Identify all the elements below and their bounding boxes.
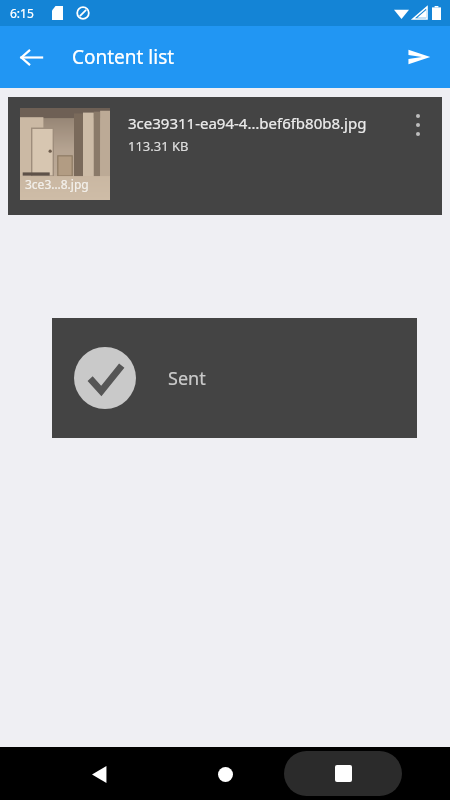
button[interactable]: Back xyxy=(76,750,124,798)
staticText: 3ce39311-ea94-4…bef6fb80b8.jpg xyxy=(128,113,367,133)
staticText: 3ce3…8.jpg xyxy=(25,176,89,192)
button[interactable]: Home xyxy=(201,750,249,798)
button[interactable]: Recent apps xyxy=(284,751,402,796)
button[interactable]: 3ce3…8.jpg xyxy=(8,97,442,215)
button[interactable]: Back xyxy=(4,30,58,84)
staticText: 113.31 KB xyxy=(128,137,189,155)
button[interactable]: Sent xyxy=(52,318,417,438)
staticText: 6:15 xyxy=(10,5,34,21)
button[interactable]: Send xyxy=(392,30,446,84)
staticText: Sent xyxy=(168,366,206,391)
button[interactable]: More options xyxy=(400,103,436,147)
staticText: Content list xyxy=(72,44,175,70)
